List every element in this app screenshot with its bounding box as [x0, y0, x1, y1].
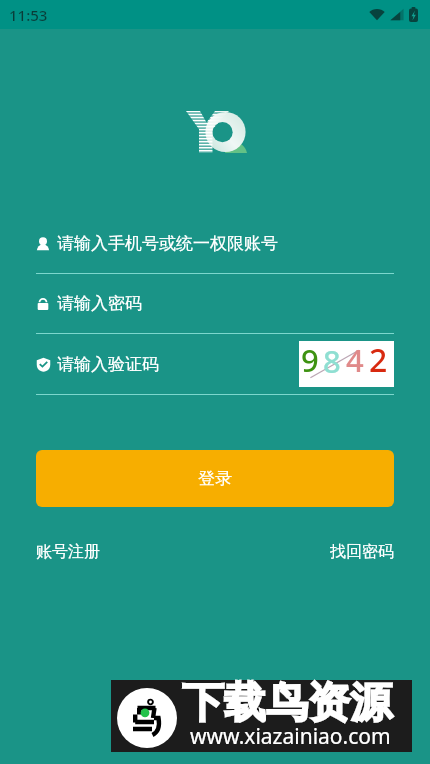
button[interactable]: Refresh captcha — [299, 341, 394, 387]
staticText: 下载鸟资源 — [182, 677, 392, 730]
button[interactable]: 登录 — [36, 450, 394, 507]
staticText: 8 — [323, 340, 341, 382]
button[interactable]: 请输入手机号或统一权限账号 — [36, 214, 394, 274]
button[interactable]: 请输入密码 — [36, 274, 394, 334]
button[interactable]: 账号注册 — [36, 540, 100, 564]
button[interactable]: 找回密码 — [330, 540, 394, 564]
staticText: 4 — [346, 339, 364, 381]
staticText: 请输入验证码 — [57, 354, 159, 375]
staticText: 11:53 — [9, 5, 48, 25]
staticText: 账号注册 — [36, 542, 100, 562]
staticText: 找回密码 — [330, 542, 394, 562]
staticText: 登录 — [198, 468, 232, 489]
staticText: 请输入手机号或统一权限账号 — [57, 233, 278, 254]
staticText: 9 — [301, 339, 319, 381]
button[interactable]: 请输入验证码 — [36, 334, 299, 394]
staticText: 2 — [369, 338, 388, 382]
staticText: www.xiazainiao.com — [190, 722, 391, 751]
staticText: 请输入密码 — [57, 293, 142, 314]
